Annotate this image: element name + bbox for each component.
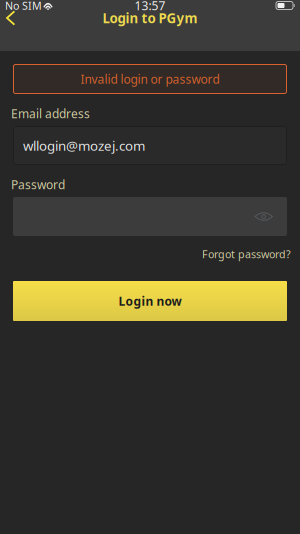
button[interactable]: Back — [0, 8, 25, 28]
button[interactable]: Forgot password? — [202, 245, 287, 263]
button[interactable]: Show password — [246, 203, 287, 230]
staticText: Login now — [118, 293, 181, 309]
staticText: Email address — [11, 105, 90, 121]
staticText: Login to PGym — [102, 9, 197, 27]
button[interactable]: Login now — [13, 281, 287, 321]
staticText: wllogin@mozej.com — [23, 137, 145, 154]
staticText: Invalid login or password — [80, 71, 219, 87]
staticText: 13:57 — [134, 0, 165, 13]
staticText: Password — [11, 176, 65, 192]
staticText: No SIM — [5, 0, 42, 13]
staticText: Forgot password? — [202, 247, 291, 261]
